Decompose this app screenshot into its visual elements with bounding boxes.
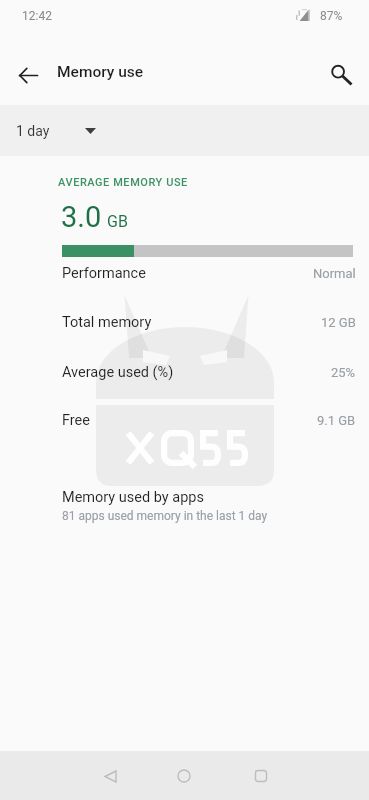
- button[interactable]: Back: [86, 752, 134, 800]
- button[interactable]: Average used (%): [0, 348, 369, 397]
- button[interactable]: Recents: [237, 752, 285, 800]
- staticText: 81 apps used memory in the last 1 day: [62, 509, 268, 523]
- staticText: GB: [107, 212, 128, 231]
- staticText: Total memory: [62, 314, 152, 331]
- staticText: 1 day: [16, 123, 50, 139]
- staticText: Memory used by apps: [62, 489, 204, 506]
- staticText: Normal: [313, 266, 356, 281]
- button[interactable]: Home: [160, 752, 208, 800]
- button[interactable]: Search: [321, 56, 361, 96]
- staticText: Performance: [62, 265, 146, 282]
- staticText: 87%: [320, 9, 343, 23]
- button[interactable]: Total memory: [0, 298, 369, 347]
- staticText: 9.1 GB: [317, 413, 356, 428]
- staticText: Free: [62, 412, 90, 429]
- staticText: 12 GB: [321, 315, 356, 330]
- staticText: 12:42: [22, 9, 52, 23]
- staticText: 3.0: [61, 200, 102, 234]
- button[interactable]: 1 day: [10, 117, 102, 145]
- button[interactable]: Back: [8, 55, 48, 95]
- staticText: AVERAGE MEMORY USE: [58, 176, 188, 189]
- button[interactable]: Performance: [0, 249, 369, 298]
- staticText: Memory use: [57, 63, 144, 81]
- button[interactable]: Free: [0, 396, 369, 445]
- staticText: 25%: [331, 365, 356, 380]
- staticText: Average used (%): [62, 364, 174, 381]
- button[interactable]: Memory used by apps: [0, 481, 369, 533]
